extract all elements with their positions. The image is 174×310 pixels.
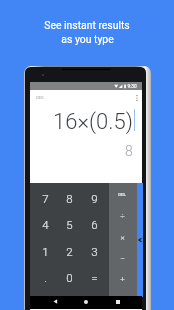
- button[interactable]: 8: [57, 185, 81, 211]
- button[interactable]: =: [82, 264, 106, 290]
- staticText: 16×(0.5): [53, 109, 133, 135]
- staticText: ÷: [120, 212, 125, 221]
- button[interactable]: .: [33, 264, 57, 290]
- staticText: 0: [66, 271, 73, 284]
- staticText: 3: [91, 245, 98, 258]
- button[interactable]: DEL: [108, 184, 136, 204]
- button[interactable]: More options: [132, 92, 142, 104]
- staticText: =: [91, 271, 98, 284]
- staticText: ×: [120, 233, 125, 242]
- staticText: DEG: [36, 95, 44, 100]
- button[interactable]: Recent apps: [110, 296, 126, 309]
- button[interactable]: 0: [57, 264, 81, 290]
- staticText: 8: [125, 143, 133, 157]
- staticText: 9: [91, 192, 98, 205]
- staticText: as you type: [61, 33, 114, 45]
- button[interactable]: ÷: [108, 206, 136, 226]
- staticText: 2: [66, 245, 73, 258]
- button[interactable]: 6: [82, 211, 106, 237]
- staticText: 4: [42, 218, 49, 231]
- staticText: 8: [66, 192, 73, 205]
- button[interactable]: 2: [57, 238, 81, 264]
- button[interactable]: 9: [82, 185, 106, 211]
- staticText: 5: [66, 218, 73, 231]
- button[interactable]: 5: [57, 211, 81, 237]
- button[interactable]: 7: [33, 185, 57, 211]
- staticText: DEL: [118, 192, 126, 197]
- button[interactable]: +: [108, 269, 136, 289]
- button[interactable]: Home: [78, 296, 94, 309]
- button[interactable]: Expand scientific keypad: [137, 183, 143, 297]
- staticText: 9:30: [127, 84, 137, 90]
- staticText: 6: [91, 218, 98, 231]
- staticText: 1: [42, 245, 49, 258]
- staticText: See instant results: [44, 19, 130, 31]
- staticText: 7: [42, 192, 49, 205]
- button[interactable]: 1: [33, 238, 57, 264]
- staticText: +: [120, 275, 125, 284]
- button[interactable]: ×: [108, 227, 136, 247]
- staticText: −: [120, 254, 125, 263]
- button[interactable]: 3: [82, 238, 106, 264]
- button[interactable]: −: [108, 248, 136, 268]
- button[interactable]: Back: [47, 296, 63, 309]
- staticText: .: [44, 271, 47, 284]
- button[interactable]: 4: [33, 211, 57, 237]
